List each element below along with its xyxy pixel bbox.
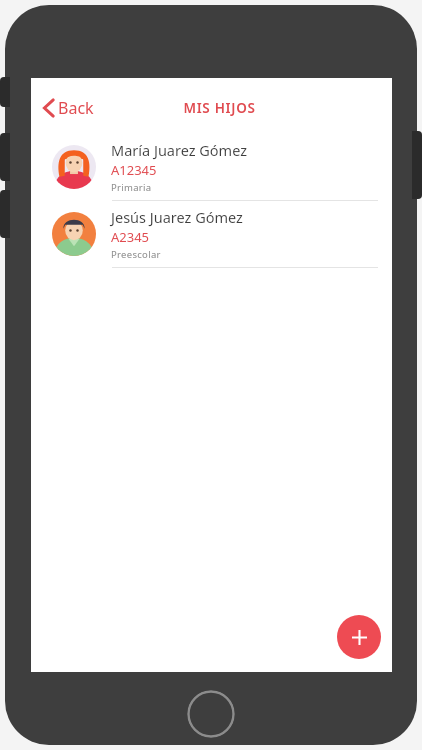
button[interactable]: Back [36, 90, 101, 126]
staticText: MIS HIJOS [183, 99, 256, 117]
staticText: Primaria [111, 181, 152, 194]
button[interactable]: Add child [337, 615, 381, 659]
staticText: María Juarez Gómez [111, 140, 248, 160]
button[interactable]: María Juarez Gómez [31, 134, 392, 201]
button[interactable]: Jesús Juarez Gómez [31, 201, 392, 268]
staticText: Jesús Juarez Gómez [111, 207, 243, 227]
staticText: A2345 [111, 228, 150, 246]
button[interactable]: Home [187, 690, 235, 738]
staticText: A12345 [111, 161, 157, 179]
staticText: Preescolar [111, 248, 161, 261]
staticText: Back [58, 97, 94, 119]
